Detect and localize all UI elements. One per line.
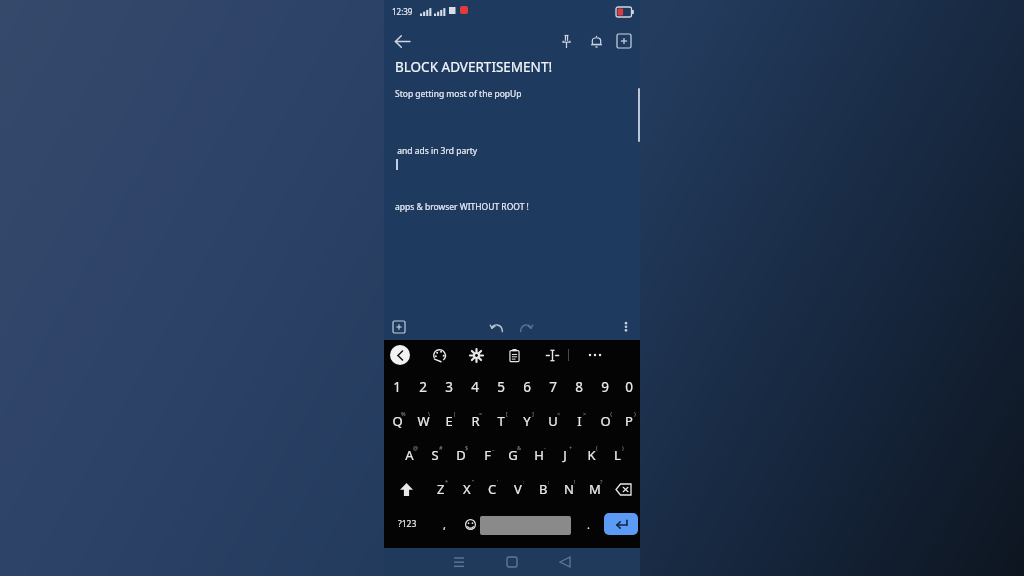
staticText: Z: [437, 480, 445, 498]
button[interactable]: Redo: [514, 315, 538, 339]
button[interactable]: :: [505, 472, 531, 506]
button[interactable]: 8: [566, 370, 592, 404]
staticText: ;: [548, 478, 550, 485]
staticText: K: [587, 446, 596, 464]
staticText: 6: [523, 378, 531, 396]
button[interactable]: +: [552, 438, 578, 472]
button[interactable]: Undo: [484, 315, 508, 339]
button[interactable]: *: [428, 472, 454, 506]
button[interactable]: @: [396, 438, 422, 472]
staticText: A: [405, 446, 414, 464]
button[interactable]: &: [500, 438, 526, 472]
staticText: _: [492, 444, 495, 451]
staticText: V: [514, 480, 522, 498]
staticText: I: [577, 412, 582, 430]
staticText: D: [456, 446, 466, 464]
button[interactable]: ,: [432, 512, 456, 536]
staticText: 0: [625, 378, 633, 396]
button[interactable]: }: [618, 404, 640, 438]
staticText: Q: [392, 412, 403, 430]
button[interactable]: _: [474, 438, 500, 472]
button[interactable]: Back: [552, 549, 578, 575]
button[interactable]: {: [592, 404, 618, 438]
staticText: !: [574, 478, 576, 485]
button[interactable]: 7: [540, 370, 566, 404]
button[interactable]: Text editing: [541, 344, 563, 366]
staticText: 7: [549, 378, 557, 396]
button[interactable]: Home: [499, 549, 525, 575]
button[interactable]: ?: [582, 472, 608, 506]
staticText: H: [534, 446, 544, 464]
button[interactable]: #: [422, 438, 448, 472]
staticText: ?123: [398, 518, 417, 530]
staticText: U: [548, 412, 558, 430]
button[interactable]: 0: [618, 370, 640, 404]
staticText: |: [453, 410, 457, 417]
button[interactable]: -: [526, 438, 552, 472]
staticText: }: [634, 410, 637, 417]
staticText: G: [508, 446, 518, 464]
button[interactable]: 3: [436, 370, 462, 404]
button[interactable]: Add: [610, 27, 638, 55]
button[interactable]: Collapse keyboard: [390, 345, 410, 365]
staticText: [: [506, 410, 508, 417]
button[interactable]: ;: [530, 472, 556, 506]
button[interactable]: Shift: [391, 472, 421, 506]
button[interactable]: 2: [410, 370, 436, 404]
button[interactable]: \: [410, 404, 436, 438]
staticText: ?: [600, 478, 603, 485]
button[interactable]: [: [488, 404, 514, 438]
staticText: {: [610, 410, 613, 417]
staticText: :: [523, 478, 525, 485]
staticText: 2: [419, 378, 427, 396]
button[interactable]: Space: [480, 516, 571, 535]
button[interactable]: Settings: [465, 344, 487, 366]
button[interactable]: Clipboard: [503, 344, 525, 366]
button[interactable]: 9: [592, 370, 618, 404]
button[interactable]: Pin: [552, 27, 580, 55]
button[interactable]: ): [604, 438, 630, 472]
button[interactable]: >: [566, 404, 592, 438]
button[interactable]: ": [454, 472, 480, 506]
button[interactable]: More options: [614, 315, 638, 339]
staticText: W: [417, 412, 430, 430]
staticText: L: [614, 446, 621, 464]
staticText: B: [539, 480, 548, 498]
button[interactable]: 1: [384, 370, 410, 404]
staticText: 12:39: [392, 6, 413, 17]
staticText: ": [472, 478, 475, 485]
staticText: X: [463, 480, 471, 498]
button[interactable]: .: [576, 512, 600, 536]
button[interactable]: Backspace: [608, 472, 638, 506]
button[interactable]: ?123: [388, 512, 426, 536]
staticText: J: [563, 446, 567, 464]
staticText: @: [413, 444, 418, 451]
staticText: 9: [601, 378, 609, 396]
staticText: \: [428, 410, 431, 417]
button[interactable]: Insert: [387, 315, 411, 339]
button[interactable]: (: [578, 438, 604, 472]
button[interactable]: Back: [388, 27, 416, 55]
button[interactable]: <: [540, 404, 566, 438]
staticText: 8: [575, 378, 583, 396]
staticText: R: [471, 412, 480, 430]
staticText: <: [557, 410, 561, 417]
button[interactable]: =: [462, 404, 488, 438]
button[interactable]: Enter: [604, 513, 638, 535]
staticText: F: [484, 446, 491, 464]
staticText: 1: [393, 378, 401, 396]
button[interactable]: Reminder: [582, 27, 610, 55]
button[interactable]: ]: [514, 404, 540, 438]
button[interactable]: ': [479, 472, 505, 506]
button[interactable]: Emoji: [458, 512, 482, 536]
button[interactable]: 5: [488, 370, 514, 404]
button[interactable]: !: [556, 472, 582, 506]
button[interactable]: Recents: [446, 549, 472, 575]
button[interactable]: 4: [462, 370, 488, 404]
button[interactable]: 6: [514, 370, 540, 404]
button[interactable]: More: [584, 344, 606, 366]
button[interactable]: $: [448, 438, 474, 472]
button[interactable]: Theme: [428, 344, 450, 366]
button[interactable]: |: [436, 404, 462, 438]
button[interactable]: %: [384, 404, 410, 438]
